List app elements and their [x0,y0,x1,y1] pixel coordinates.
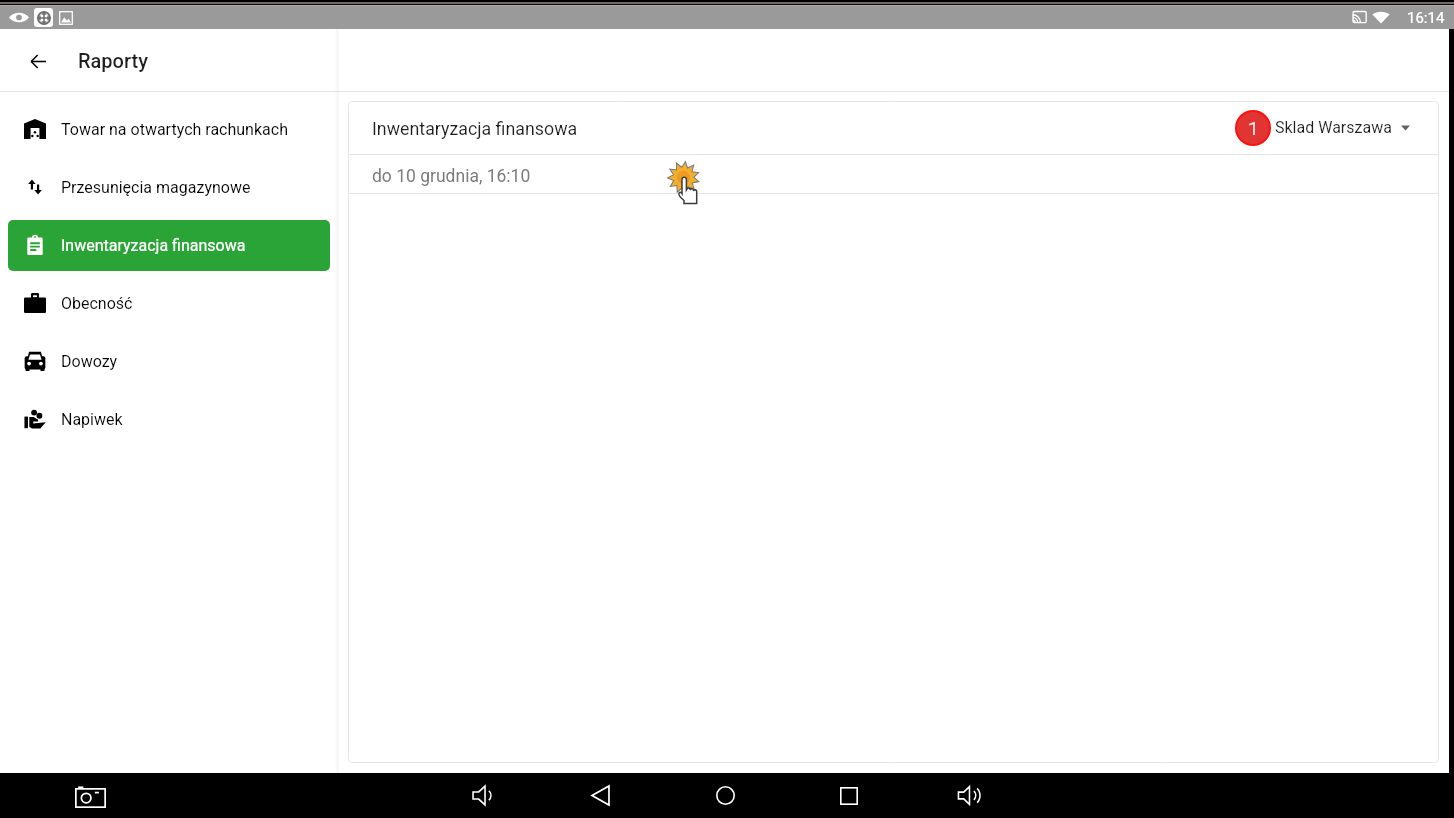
staticText: 1 [1248,117,1259,139]
button[interactable]: Screenshot [72,780,108,816]
button[interactable]: Przesunięcia magazynowe [8,162,330,213]
button[interactable]: Volume down [462,775,503,816]
button[interactable]: Home [706,775,745,816]
staticText: Inwentaryzacja finansowa [372,118,578,139]
button[interactable]: Back [21,43,55,77]
button[interactable]: Napiwek [8,394,330,445]
button[interactable]: Obecność [8,278,330,329]
button[interactable]: Towar na otwartych rachunkach [8,104,330,155]
staticText: Sklad Warszawa [1275,118,1392,137]
button[interactable]: Recents [830,775,868,816]
staticText: Raporty [78,49,148,72]
button[interactable]: Inwentaryzacja finansowa [8,220,330,271]
staticText: Inwentaryzacja finansowa [61,236,246,255]
staticText: Napiwek [61,410,123,429]
button[interactable]: Inwentaryzacja finansowa [348,101,1439,154]
staticText: 16:14 [1407,9,1445,27]
staticText: Dowozy [61,352,118,371]
staticText: Obecność [61,294,133,313]
button[interactable]: Volume up [947,775,991,816]
staticText: Przesunięcia magazynowe [61,178,251,197]
staticText: Towar na otwartych rachunkach [61,120,288,139]
button[interactable]: do 10 grudnia, 16:10 [348,155,1439,193]
button[interactable]: Back [581,775,620,816]
button[interactable]: Dowozy [8,336,330,387]
staticText: do 10 grudnia, 16:10 [372,166,531,187]
